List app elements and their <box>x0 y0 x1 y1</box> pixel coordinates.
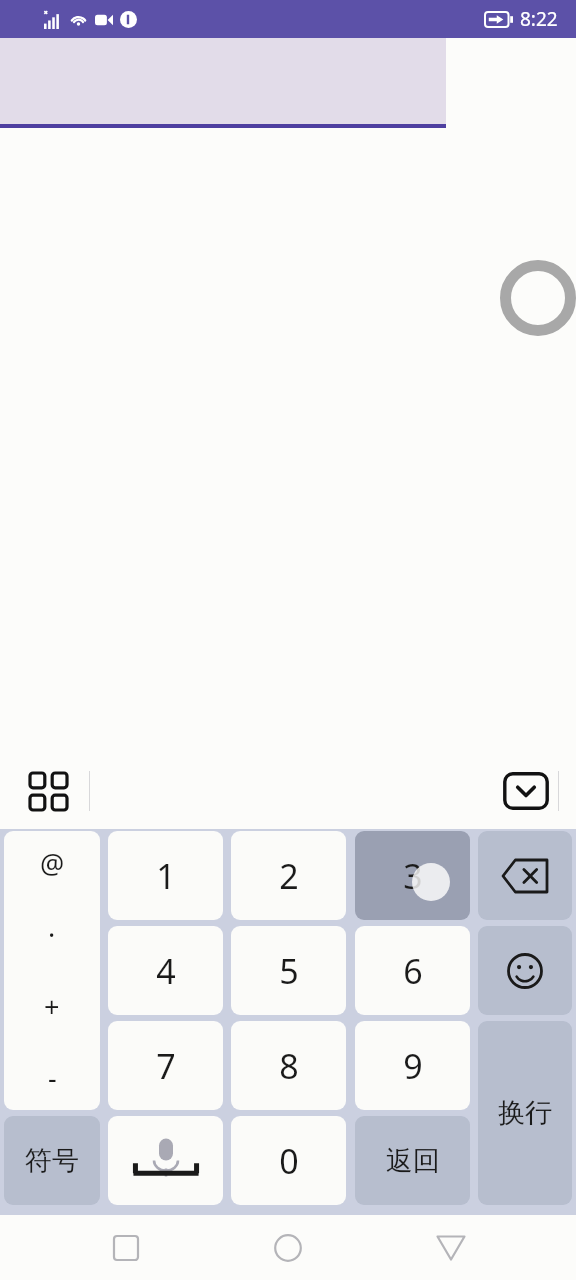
button[interactable]: Back <box>414 1215 488 1280</box>
button[interactable]: 符号 <box>4 1116 100 1205</box>
staticText: @ <box>40 845 65 882</box>
button[interactable]: 6 <box>355 926 470 1015</box>
staticText: · <box>48 916 56 953</box>
staticText: 符号 <box>25 1144 79 1178</box>
staticText: - <box>48 1059 57 1096</box>
staticText: 8 <box>279 1043 299 1089</box>
staticText: 6 <box>403 948 423 994</box>
staticText: 3 <box>403 853 423 899</box>
button[interactable] <box>478 926 572 1015</box>
button[interactable] <box>108 1116 223 1205</box>
button[interactable]: Hide keyboard <box>498 763 554 819</box>
button[interactable]: 1 <box>108 831 223 920</box>
staticText: 换行 <box>498 1096 552 1130</box>
button[interactable]: 3 <box>355 831 470 920</box>
staticText: 9 <box>403 1043 423 1089</box>
button[interactable]: 9 <box>355 1021 470 1110</box>
staticText: 返回 <box>386 1144 440 1178</box>
staticText: 0 <box>279 1138 299 1184</box>
button[interactable]: 换行 <box>478 1021 572 1205</box>
staticText: 2 <box>279 853 299 899</box>
button[interactable]: @ <box>4 831 100 1110</box>
button[interactable]: 4 <box>108 926 223 1015</box>
staticText: 5 <box>279 948 299 994</box>
other: Ring indicator <box>500 260 576 336</box>
button[interactable] <box>478 831 572 920</box>
button[interactable]: Keyboard layouts <box>18 761 78 821</box>
button[interactable]: Home <box>251 1215 325 1280</box>
staticText: + <box>44 988 60 1025</box>
button[interactable] <box>0 38 446 128</box>
button[interactable]: 8 <box>231 1021 346 1110</box>
staticText: 1 <box>156 853 176 899</box>
staticText: 4 <box>156 948 176 994</box>
staticText: 7 <box>156 1043 176 1089</box>
button[interactable]: Recent apps <box>89 1215 163 1280</box>
button[interactable]: 0 <box>231 1116 346 1205</box>
button[interactable]: 5 <box>231 926 346 1015</box>
button[interactable]: 2 <box>231 831 346 920</box>
staticText: 8:22 <box>520 6 558 32</box>
button[interactable]: 7 <box>108 1021 223 1110</box>
button[interactable]: 返回 <box>355 1116 470 1205</box>
